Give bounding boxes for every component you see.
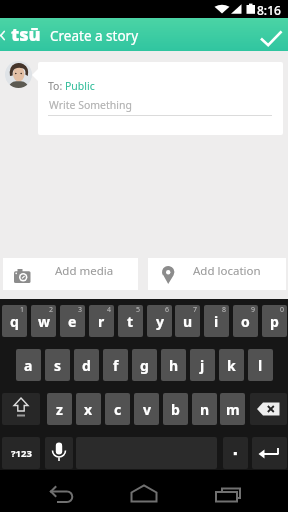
staticText: l <box>258 356 263 375</box>
button[interactable]: Add location <box>148 258 286 290</box>
staticText: c <box>114 400 122 419</box>
staticText: 4 <box>107 305 112 315</box>
button[interactable] <box>223 437 248 469</box>
button[interactable]: u <box>175 305 200 337</box>
staticText: 7 <box>193 305 198 315</box>
button[interactable]: e <box>60 305 85 337</box>
button[interactable]: k <box>219 349 244 381</box>
staticText: Create a story <box>50 27 139 45</box>
button[interactable]: v <box>134 393 159 425</box>
staticText: p <box>270 312 279 331</box>
staticText: k <box>227 356 236 375</box>
button[interactable]: p <box>262 305 287 337</box>
staticText: Write Something <box>49 98 132 112</box>
staticText: f <box>113 356 119 375</box>
button[interactable] <box>45 437 73 469</box>
button[interactable]: y <box>147 305 172 337</box>
button[interactable]: h <box>161 349 186 381</box>
staticText: m <box>226 400 240 419</box>
staticText: 8:16 <box>257 2 281 18</box>
button[interactable]: m <box>220 393 245 425</box>
staticText: 1 <box>20 305 25 315</box>
button[interactable]: o <box>233 305 258 337</box>
button[interactable]: t <box>118 305 143 337</box>
staticText: 9 <box>251 305 256 315</box>
button[interactable]: f <box>103 349 128 381</box>
staticText: 8 <box>222 305 227 315</box>
staticText: j <box>200 356 205 375</box>
button[interactable]: c <box>105 393 130 425</box>
staticText: r <box>98 312 105 331</box>
staticText: a <box>24 356 33 375</box>
staticText: ?123 <box>11 447 32 460</box>
button[interactable]: j <box>190 349 215 381</box>
staticText: To: <box>48 79 63 93</box>
staticText: v <box>143 400 151 419</box>
button[interactable]: r <box>89 305 114 337</box>
button[interactable]: ?123 <box>2 437 40 469</box>
staticText: h <box>169 356 179 375</box>
button[interactable] <box>250 393 287 425</box>
staticText: w <box>38 312 50 331</box>
staticText: 5 <box>136 305 141 315</box>
button[interactable]: w <box>31 305 56 337</box>
button[interactable]: Add media <box>3 258 138 290</box>
staticText: e <box>68 312 77 331</box>
staticText: i <box>214 312 219 331</box>
button[interactable] <box>204 475 252 507</box>
button[interactable] <box>120 475 168 507</box>
button[interactable]: a <box>16 349 41 381</box>
button[interactable]: x <box>76 393 101 425</box>
button[interactable]: q <box>2 305 27 337</box>
button[interactable]: n <box>192 393 217 425</box>
staticText: 6 <box>165 305 170 315</box>
staticText: b <box>171 400 180 419</box>
button[interactable] <box>2 393 40 425</box>
staticText: 2 <box>49 305 54 315</box>
button[interactable]: l <box>248 349 273 381</box>
staticText: s <box>54 356 62 375</box>
staticText: n <box>200 400 210 419</box>
button[interactable]: z <box>47 393 72 425</box>
button[interactable] <box>252 437 287 469</box>
staticText: Add media <box>55 263 114 279</box>
button[interactable]: tsū <box>11 22 41 47</box>
staticText: y <box>156 312 164 331</box>
staticText: o <box>241 312 250 331</box>
staticText: u <box>183 312 193 331</box>
staticText: x <box>84 400 93 419</box>
button[interactable]: s <box>45 349 70 381</box>
button[interactable] <box>36 480 84 508</box>
staticText: d <box>82 356 91 375</box>
staticText: Add location <box>193 263 261 279</box>
button[interactable]: b <box>163 393 188 425</box>
button[interactable]: Public <box>65 79 95 93</box>
staticText: 3 <box>78 305 83 315</box>
staticText: q <box>10 312 19 331</box>
button[interactable]: i <box>204 305 229 337</box>
button[interactable]: d <box>74 349 99 381</box>
button[interactable]: g <box>132 349 157 381</box>
staticText: 0 <box>280 305 285 315</box>
staticText: t <box>127 312 134 331</box>
staticText: g <box>140 356 149 375</box>
staticText: z <box>56 400 63 419</box>
